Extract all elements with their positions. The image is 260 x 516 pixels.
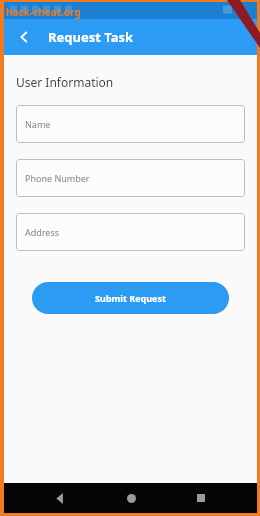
button[interactable]: Phone Number [16, 159, 245, 197]
button[interactable]: Recent apps [186, 483, 216, 513]
button[interactable]: Back [45, 483, 75, 513]
staticText: Address [25, 226, 60, 238]
staticText: Submit Request [95, 292, 166, 304]
staticText: hack-cheat.org [6, 5, 81, 19]
button[interactable]: Address [16, 213, 245, 251]
button[interactable]: Home [116, 483, 146, 513]
button[interactable]: Name [16, 105, 245, 143]
staticText: Request Task [48, 28, 134, 46]
staticText: Name [25, 118, 51, 130]
staticText: User Information [16, 74, 114, 90]
staticText: Phone Number [25, 172, 90, 184]
button[interactable]: Submit Request [32, 282, 229, 314]
button[interactable]: Back [11, 24, 37, 50]
